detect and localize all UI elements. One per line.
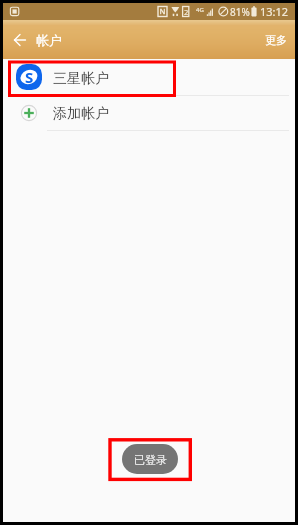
button[interactable]: 添加帐户 [3,96,295,130]
button[interactable]: S [3,59,295,95]
staticText: 已登录 [134,453,167,467]
staticText: 三星帐户 [53,70,109,88]
staticText: 更多 [265,33,287,47]
staticText: 2 [184,7,189,17]
staticText: 13:12 [260,4,289,19]
staticText: 4G [196,6,204,14]
staticText: S [25,67,34,87]
button[interactable]: 更多 [255,20,295,59]
staticText: 81% [230,5,250,19]
button[interactable]: 已登录 [122,444,178,474]
staticText: 帐户 [36,32,62,48]
staticText: 添加帐户 [53,105,109,123]
button[interactable]: Back [3,20,36,59]
